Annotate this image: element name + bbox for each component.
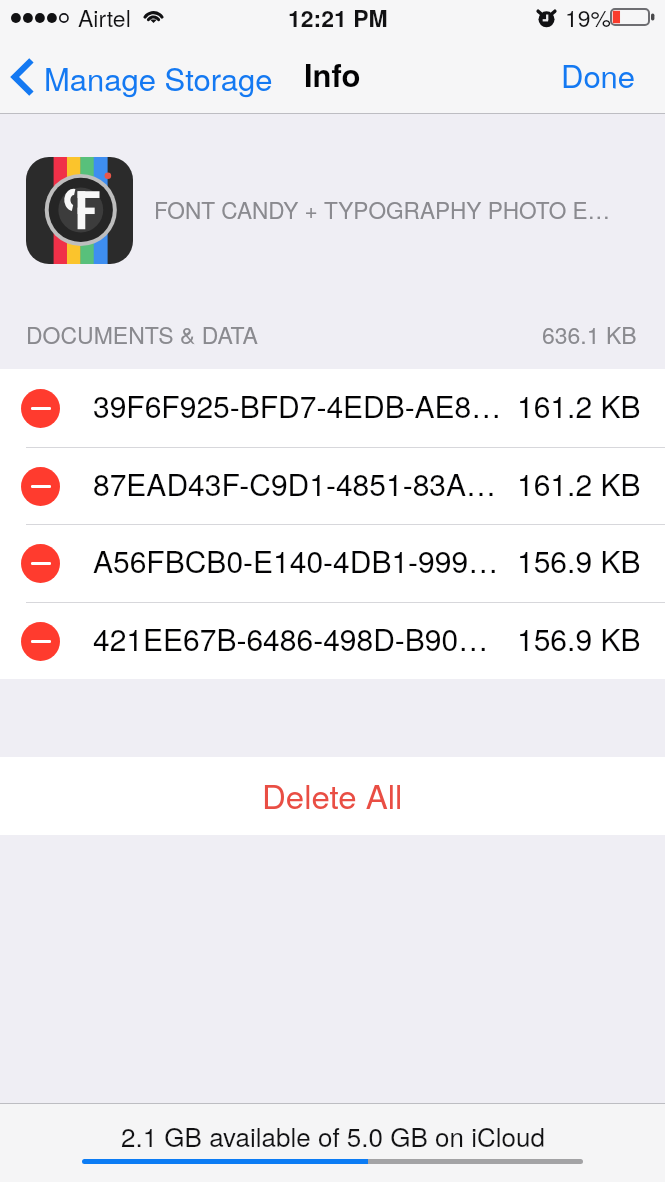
- staticText: Airtel: [78, 1, 131, 34]
- button[interactable]: Remove 87EAD43F-C9D1-4851-83A…: [21, 467, 60, 506]
- button[interactable]: Back: [0, 40, 283, 114]
- staticText: 161.2 KB: [517, 462, 641, 505]
- staticText: Delete All: [262, 771, 403, 818]
- button[interactable]: Done: [532, 40, 665, 114]
- staticText: 12:21 PM: [288, 1, 388, 34]
- button[interactable]: Remove A56FBCB0-E140-4DB1-999…: [0, 524, 665, 602]
- staticText: FONT CANDY + TYPOGRAPHY PHOTO E…: [154, 193, 611, 225]
- staticText: 19%: [565, 1, 612, 34]
- staticText: 87EAD43F-C9D1-4851-83A…: [93, 462, 497, 505]
- staticText: 421EE67B-6486-498D-B90…: [93, 617, 489, 660]
- other: Back: [11, 57, 35, 97]
- staticText: 636.1 KB: [542, 318, 637, 351]
- staticText: A56FBCB0-E140-4DB1-999…: [93, 539, 499, 582]
- staticText: 2.1 GB available of 5.0 GB on iCloud: [121, 1117, 545, 1154]
- staticText: DOCUMENTS & DATA: [26, 318, 258, 351]
- button[interactable]: Remove 87EAD43F-C9D1-4851-83A…: [0, 447, 665, 525]
- button[interactable]: Remove 39F6F925-BFD7-4EDB-AE8…: [0, 369, 665, 447]
- staticText: Done: [561, 52, 636, 96]
- staticText: Info: [304, 52, 361, 96]
- button[interactable]: Remove A56FBCB0-E140-4DB1-999…: [21, 544, 60, 583]
- button[interactable]: Remove 421EE67B-6486-498D-B90…: [0, 602, 665, 680]
- button[interactable]: Remove 421EE67B-6486-498D-B90…: [21, 622, 60, 661]
- staticText: 156.9 KB: [517, 539, 641, 582]
- staticText: 156.9 KB: [517, 617, 641, 660]
- staticText: 161.2 KB: [517, 384, 641, 427]
- button[interactable]: Delete All: [0, 757, 665, 835]
- staticText: Manage Storage: [44, 55, 273, 99]
- staticText: 39F6F925-BFD7-4EDB-AE8…: [93, 384, 502, 427]
- button[interactable]: Remove 39F6F925-BFD7-4EDB-AE8…: [21, 389, 60, 428]
